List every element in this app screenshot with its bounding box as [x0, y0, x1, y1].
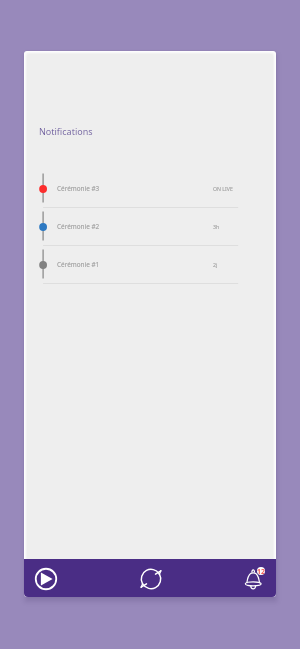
button[interactable]: Notifications: [238, 559, 268, 597]
button[interactable]: Cérémonie #2: [24, 208, 276, 246]
button[interactable]: Cérémonie #1: [24, 246, 276, 284]
staticText: Notifications: [39, 125, 93, 137]
staticText: ON LIVE: [213, 185, 233, 192]
staticText: Cérémonie #3: [57, 184, 100, 193]
button[interactable]: Play: [31, 560, 61, 597]
staticText: Cérémonie #1: [57, 260, 100, 269]
staticText: 3h: [213, 223, 220, 230]
staticText: Cérémonie #2: [57, 222, 100, 231]
staticText: 2j: [213, 261, 218, 268]
staticText: 12: [257, 567, 265, 575]
button[interactable]: Cérémonie #3: [24, 170, 276, 208]
button[interactable]: Refresh: [136, 560, 166, 597]
